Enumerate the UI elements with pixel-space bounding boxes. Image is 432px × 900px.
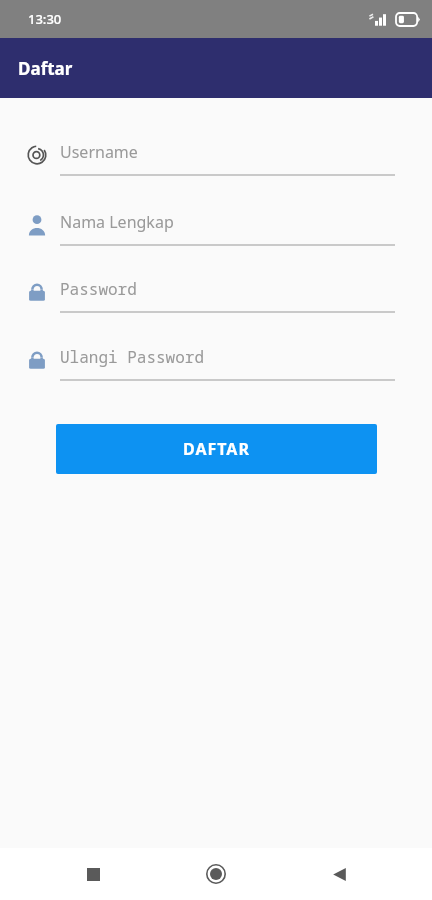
button[interactable]: Password — [0, 271, 432, 313]
staticText: Username — [60, 141, 138, 163]
staticText: 13:30 — [28, 10, 62, 28]
button[interactable]: DAFTAR — [56, 424, 377, 474]
staticText: DAFTAR — [183, 438, 250, 460]
button[interactable]: Home — [192, 850, 240, 898]
button[interactable]: Back — [315, 850, 363, 898]
button[interactable]: Recent apps — [69, 850, 117, 898]
staticText: Password — [60, 278, 137, 300]
staticText: Ulangi Password — [60, 346, 205, 368]
button[interactable]: Ulangi Password — [0, 339, 432, 381]
button[interactable]: Nama Lengkap — [0, 204, 432, 246]
staticText: Nama Lengkap — [60, 211, 174, 233]
staticText: Daftar — [18, 57, 73, 80]
button[interactable]: Username — [0, 134, 432, 176]
